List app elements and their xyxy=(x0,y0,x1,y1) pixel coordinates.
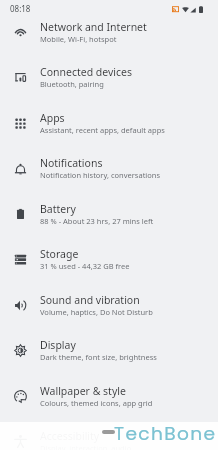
staticText: Apps xyxy=(40,111,65,125)
staticText: Mobile, Wi-Fi, hotspot xyxy=(40,34,117,44)
staticText: Notification history, conversations xyxy=(40,170,161,180)
button[interactable]: Notifications xyxy=(0,145,218,191)
button[interactable]: Wallpaper & style xyxy=(0,373,218,419)
staticText: Storage xyxy=(40,247,79,261)
staticText: Network and Internet xyxy=(40,20,147,34)
staticText: 88 % - About 23 hrs, 27 mins left xyxy=(40,216,154,226)
staticText: Sound and vibration xyxy=(40,293,140,307)
button[interactable]: Display xyxy=(0,327,218,373)
button[interactable]: Accessibility xyxy=(0,418,218,450)
staticText: Bluetooth, pairing xyxy=(40,79,104,89)
staticText: Battery xyxy=(40,202,76,216)
staticText: Connected devices xyxy=(40,65,133,79)
button[interactable]: Network and Internet xyxy=(0,9,218,55)
button[interactable]: Battery xyxy=(0,191,218,237)
button[interactable]: Storage xyxy=(0,236,218,282)
staticText: Display xyxy=(40,338,76,352)
staticText: Wallpaper & style xyxy=(40,384,126,398)
staticText: Assistant, recent apps, default apps xyxy=(40,125,165,135)
button[interactable]: Connected devices xyxy=(0,54,218,100)
staticText: Notifications xyxy=(40,156,103,170)
staticText: 08:18 xyxy=(10,3,31,14)
staticText: Dark theme, font size, brightness xyxy=(40,352,157,362)
staticText: Colours, themed icons, app grid xyxy=(40,398,153,408)
button[interactable]: Apps xyxy=(0,100,218,146)
staticText: Volume, haptics, Do Not Disturb xyxy=(40,307,153,317)
staticText: TechBone xyxy=(114,420,217,446)
button[interactable]: Sound and vibration xyxy=(0,282,218,328)
staticText: 31 % used - 44,32 GB free xyxy=(40,261,130,271)
